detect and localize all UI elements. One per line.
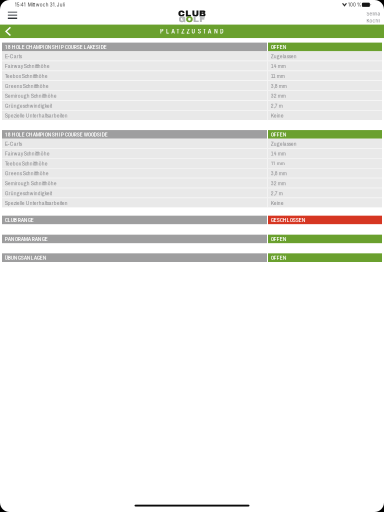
- staticText: 18 HOLE CHAMPIONSHIP COURSE WOODSIDE: [5, 131, 108, 138]
- staticText: Fairway Schnitthöhe: [5, 62, 50, 70]
- staticText: 32 mm: [271, 179, 286, 187]
- button[interactable]: Back: [4, 25, 22, 38]
- staticText: Greens Schnitthöhe: [5, 169, 49, 177]
- staticText: G: [179, 14, 186, 24]
- staticText: OFFEN: [271, 131, 287, 138]
- staticText: Teebox Schnitthöhe: [5, 72, 48, 80]
- staticText: 3,8 mm: [271, 169, 287, 177]
- button[interactable]: Selina: [358, 10, 380, 25]
- staticText: Zugelassen: [271, 52, 297, 60]
- staticText: CLUB: [178, 9, 206, 18]
- staticText: E-Carts: [5, 52, 22, 60]
- staticText: Grüngeschwindigkeit: [5, 101, 52, 110]
- staticText: LF: [193, 14, 205, 24]
- staticText: OFFEN: [271, 236, 287, 242]
- staticText: 15:41 Mittwoch 31. Juli: [15, 2, 65, 8]
- staticText: O: [186, 14, 193, 24]
- staticText: Semirough Schnitthöhe: [5, 179, 57, 187]
- staticText: 3,8 mm: [271, 82, 287, 90]
- staticText: Teebox Schnitthöhe: [5, 159, 48, 167]
- staticText: OFFEN: [271, 254, 287, 261]
- button[interactable]: Menu: [4, 10, 21, 25]
- staticText: 14 mm: [271, 149, 286, 157]
- staticText: Selina: [366, 11, 380, 17]
- staticText: Spezielle Unterhaltsarbeiten: [5, 199, 68, 207]
- staticText: E-Carts: [5, 139, 22, 147]
- staticText: 14 mm: [271, 62, 286, 70]
- staticText: Spezielle Unterhaltsarbeiten: [5, 111, 68, 119]
- staticText: Keine: [271, 199, 284, 207]
- staticText: 11 mm: [271, 159, 285, 167]
- staticText: PLATZZUSTAND: [160, 28, 224, 35]
- staticText: Grüngeschwindigkeit: [5, 189, 52, 197]
- staticText: ÜBUNGSANLAGEN: [5, 254, 47, 261]
- staticText: Köchli: [366, 18, 380, 24]
- staticText: Greens Schnitthöhe: [5, 82, 49, 90]
- staticText: GESCHLOSSEN: [271, 217, 306, 223]
- staticText: Fairway Schnitthöhe: [5, 149, 50, 157]
- staticText: 32 mm: [271, 92, 286, 100]
- staticText: 2,7 m: [271, 189, 283, 197]
- staticText: CLUB RANGE: [5, 217, 34, 223]
- staticText: PANORAMA RANGE: [5, 236, 48, 242]
- staticText: Semirough Schnitthöhe: [5, 92, 57, 100]
- staticText: OFFEN: [271, 44, 287, 50]
- staticText: Zugelassen: [271, 139, 297, 147]
- staticText: 100 %: [347, 2, 362, 8]
- staticText: 18 HOLE CHAMPIONSHIP COURSE LAKESIDE: [5, 44, 107, 50]
- staticText: Keine: [271, 111, 284, 119]
- staticText: 11 mm: [271, 72, 285, 80]
- staticText: 2,7 m: [271, 101, 283, 110]
